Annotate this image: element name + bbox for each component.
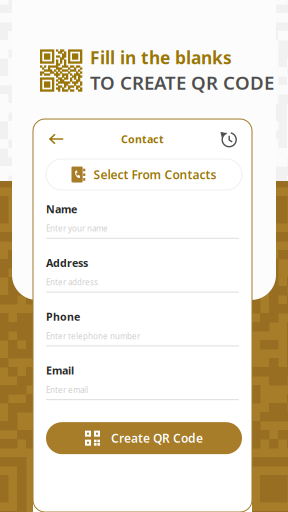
button[interactable]: Create QR Code — [46, 422, 242, 454]
staticText: Enter telephone number — [46, 331, 140, 341]
staticText: Fill in the blanks — [90, 46, 232, 69]
staticText: Name — [46, 202, 77, 216]
staticText: Enter your name — [46, 223, 108, 234]
staticText: Email — [46, 363, 74, 378]
staticText: Enter email — [46, 384, 88, 395]
staticText: Select From Contacts — [93, 166, 216, 182]
staticText: Create QR Code — [111, 430, 203, 446]
button[interactable]: Select From Contacts — [46, 159, 242, 190]
staticText: TO CREATE QR CODE — [90, 70, 274, 95]
staticText: Enter address — [46, 277, 98, 288]
staticText: Contact — [121, 132, 164, 146]
button[interactable]: Back — [42, 126, 71, 152]
button[interactable]: History — [214, 126, 243, 152]
staticText: Phone — [46, 310, 80, 324]
staticText: Address — [46, 256, 88, 270]
